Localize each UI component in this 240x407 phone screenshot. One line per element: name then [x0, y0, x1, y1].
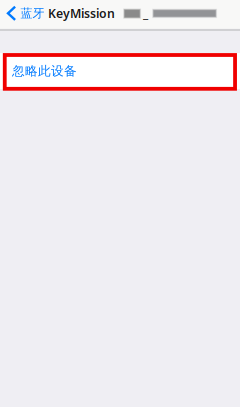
staticText: 蓝牙 [21, 6, 45, 21]
staticText: 忽略此设备 [12, 63, 77, 79]
staticText: KeyMission [48, 5, 115, 22]
staticText: _ [143, 5, 148, 22]
button[interactable]: 忽略此设备 [0, 53, 240, 89]
button[interactable]: 返回 蓝牙 [0, 0, 48, 29]
